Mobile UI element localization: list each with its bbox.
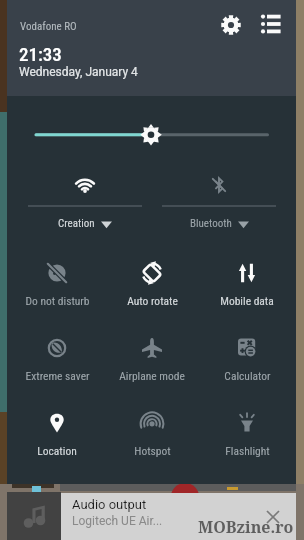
staticText: Location — [37, 444, 77, 457]
button[interactable]: Settings — [215, 9, 247, 41]
button[interactable]: Brightness — [7, 112, 296, 158]
button[interactable]: Creation — [28, 160, 142, 234]
staticText: Extreme saver — [25, 369, 90, 382]
button[interactable]: Extreme saver — [10, 315, 104, 385]
button[interactable]: Do not disturb — [10, 240, 104, 310]
button[interactable]: Flashlight — [200, 390, 294, 460]
staticText: Logitech UE Air... — [72, 514, 163, 528]
staticText: Auto rotate — [127, 294, 178, 307]
staticText: Audio output — [72, 497, 147, 512]
staticText: Creation — [58, 217, 95, 230]
button[interactable]: Dismiss — [261, 505, 285, 529]
staticText: Calculator — [224, 369, 271, 382]
staticText: Airplane mode — [119, 369, 185, 382]
button[interactable]: Audio output — [61, 493, 296, 540]
button[interactable]: Airplane mode — [105, 315, 199, 385]
staticText: Vodafone RO — [20, 20, 77, 33]
button[interactable]: Calculator — [200, 315, 294, 385]
staticText: Bluetooth — [190, 217, 232, 230]
button[interactable]: Location — [10, 390, 104, 460]
staticText: Do not disturb — [25, 294, 90, 307]
button[interactable]: Mobile data — [200, 240, 294, 310]
staticText: Wednesday, January 4 — [19, 65, 138, 79]
staticText: MOBzine.ro — [198, 516, 294, 538]
button[interactable]: Hotspot — [105, 390, 199, 460]
staticText: 21:33 — [19, 43, 62, 65]
button[interactable]: Auto rotate — [105, 240, 199, 310]
staticText: Mobile data — [220, 294, 274, 307]
button[interactable]: Edit tiles — [255, 8, 287, 40]
staticText: Flashlight — [225, 444, 270, 457]
button[interactable]: Bluetooth — [162, 160, 276, 234]
staticText: Hotspot — [134, 444, 171, 457]
